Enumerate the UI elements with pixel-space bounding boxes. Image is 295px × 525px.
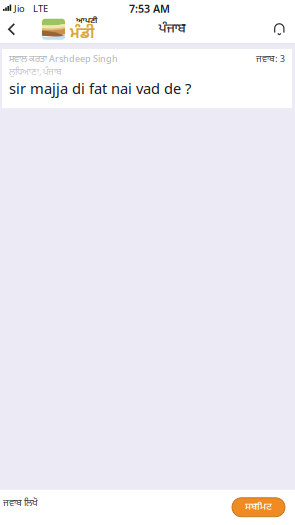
button[interactable]: Back: [0, 17, 42, 41]
staticText: Jio: [14, 2, 25, 15]
staticText: ਮੰਡੀ: [70, 24, 95, 44]
staticText: LTE: [33, 2, 48, 15]
staticText: ਜਵਾਬ: 3: [256, 54, 285, 66]
staticText: sir majja di fat nai vad de ?: [9, 79, 191, 98]
staticText: 7:53 AM: [129, 1, 170, 16]
staticText: ਪੰਜਾਬ: [158, 21, 185, 38]
staticText: ਲੁਧਿਆਣਾ, ਪੰਜਾਬ: [9, 67, 62, 79]
staticText: ਜਵਾਬ ਲਿਖੋ: [3, 498, 38, 510]
staticText: ਸਵਾਲ ਕਰਤਾ Arshdeep Singh: [9, 54, 118, 66]
button[interactable]: ਸਬਮਿਟ: [232, 498, 285, 517]
staticText: ਸਬਮਿਟ: [245, 501, 272, 514]
button[interactable]: Notifications: [264, 16, 295, 42]
staticText: ਆਪਣੀ: [76, 16, 97, 26]
